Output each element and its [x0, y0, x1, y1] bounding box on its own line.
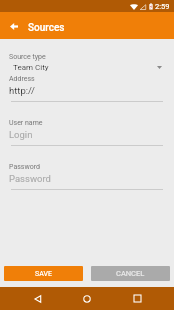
- staticText: 2:59: [155, 2, 170, 11]
- button[interactable]: CANCEL: [91, 266, 170, 281]
- button[interactable]: Navigate up: [1, 13, 27, 39]
- staticText: Source type: [9, 53, 46, 61]
- staticText: CANCEL: [116, 269, 145, 278]
- staticText: Login: [9, 129, 33, 140]
- staticText: User name: [9, 119, 43, 127]
- staticText: Sources: [28, 22, 65, 34]
- button[interactable]: Team City: [0, 60, 174, 74]
- button[interactable]: Back: [26, 287, 50, 310]
- button[interactable]: Recent apps: [125, 287, 149, 310]
- button[interactable]: Home: [75, 287, 99, 310]
- staticText: Password: [9, 163, 40, 171]
- button[interactable]: SAVE: [4, 266, 83, 281]
- staticText: http://: [9, 85, 35, 96]
- staticText: SAVE: [35, 270, 52, 278]
- staticText: Password: [9, 173, 51, 184]
- staticText: Address: [9, 75, 35, 83]
- staticText: Team City: [13, 63, 49, 72]
